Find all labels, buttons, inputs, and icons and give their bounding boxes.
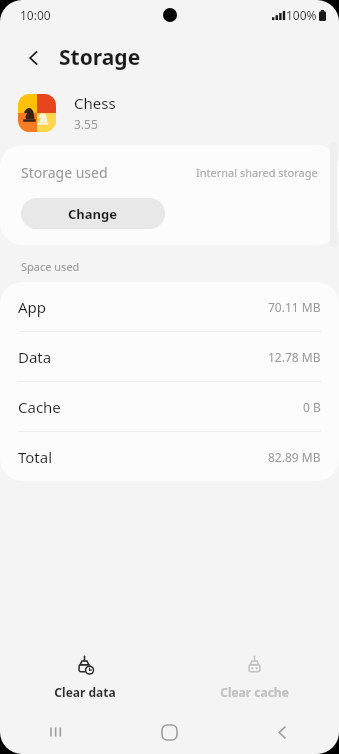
- staticText: App: [18, 297, 47, 317]
- button[interactable]: App: [0, 282, 339, 332]
- button[interactable]: Back: [18, 42, 50, 74]
- staticText: Internal shared storage: [196, 165, 318, 180]
- staticText: Storage used: [21, 163, 108, 182]
- staticText: 10:00: [20, 7, 51, 23]
- button[interactable]: Clear data: [0, 644, 169, 710]
- staticText: Space used: [21, 259, 80, 274]
- staticText: Change: [68, 205, 118, 223]
- button[interactable]: Clear cache: [169, 644, 339, 710]
- staticText: Clear data: [54, 684, 116, 700]
- staticText: Cache: [18, 397, 61, 417]
- button[interactable]: Recent apps: [0, 710, 113, 754]
- staticText: 70.11 MB: [268, 299, 321, 315]
- button[interactable]: Total: [0, 432, 339, 481]
- staticText: 12.78 MB: [268, 349, 321, 365]
- button[interactable]: Back: [226, 710, 339, 754]
- staticText: 0 B: [303, 399, 321, 415]
- staticText: Clear cache: [220, 684, 289, 700]
- button[interactable]: Cache: [0, 382, 339, 432]
- staticText: Data: [18, 347, 52, 367]
- button[interactable]: Home: [113, 710, 226, 754]
- button[interactable]: Data: [0, 332, 339, 382]
- staticText: Chess: [74, 93, 116, 113]
- staticText: Storage: [59, 43, 141, 72]
- staticText: 82.89 MB: [268, 449, 321, 465]
- button[interactable]: Change: [21, 198, 165, 229]
- staticText: 3.55: [74, 116, 98, 132]
- staticText: Total: [18, 447, 53, 467]
- staticText: 100%: [286, 7, 317, 23]
